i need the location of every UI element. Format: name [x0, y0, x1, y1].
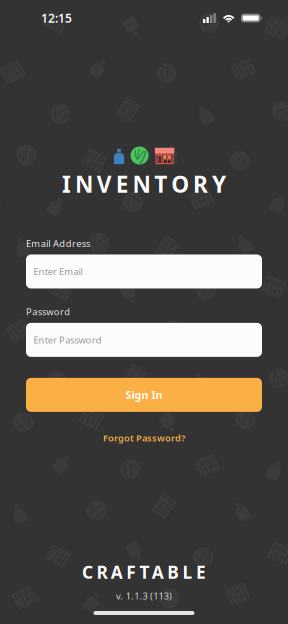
- staticText: Sign In: [125, 388, 162, 402]
- button[interactable]: Forgot Password?: [26, 429, 262, 447]
- staticText: v. 1.1.3 (113): [116, 590, 172, 602]
- staticText: CRAFTABLE: [82, 561, 206, 584]
- button[interactable]: Sign In: [26, 378, 262, 412]
- staticText: Email Address: [26, 237, 90, 249]
- staticText: Password: [26, 305, 70, 318]
- staticText: Forgot Password?: [103, 432, 185, 444]
- staticText: INVENTORY: [62, 169, 226, 199]
- staticText: Enter Email: [33, 265, 82, 278]
- staticText: 12:15: [41, 10, 72, 26]
- staticText: Enter Password: [33, 334, 102, 346]
